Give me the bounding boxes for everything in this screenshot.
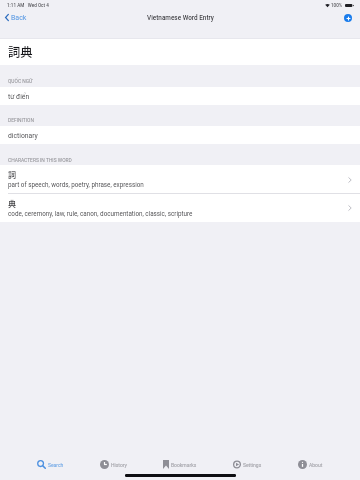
staticText: About <box>309 462 323 468</box>
button[interactable]: 詞 <box>0 165 360 194</box>
button[interactable]: Search <box>36 458 65 471</box>
staticText: Back <box>11 14 27 22</box>
button[interactable]: History <box>99 458 128 471</box>
staticText: code, ceremony, law, rule, canon, docume… <box>8 210 193 217</box>
staticText: DEFINITION <box>8 117 34 123</box>
button[interactable]: 典 <box>0 194 360 222</box>
staticText: CHARACTERS IN THIS WORD <box>8 157 72 163</box>
button[interactable]: Bookmarks <box>162 458 198 471</box>
staticText: dictionary <box>8 132 38 140</box>
button[interactable]: từ điển <box>0 87 360 105</box>
button[interactable]: About <box>297 458 324 471</box>
staticText: Settings <box>243 462 262 468</box>
staticText: từ điển <box>8 93 30 101</box>
button[interactable]: Add entry <box>344 14 352 22</box>
staticText: Search <box>48 462 64 468</box>
staticText: Vietnamese Word Entry <box>147 14 214 22</box>
staticText: 詞 <box>8 169 17 181</box>
staticText: 典 <box>8 198 17 210</box>
staticText: QUỐC NGỮ <box>8 78 33 84</box>
staticText: Bookmarks <box>171 462 197 468</box>
staticText: History <box>111 462 127 468</box>
button[interactable]: dictionary <box>0 126 360 144</box>
button[interactable]: Settings <box>232 458 263 471</box>
staticText: 詞典 <box>8 43 33 61</box>
staticText: part of speech, words, poetry, phrase, e… <box>8 181 144 188</box>
staticText: 1:11 AM Wed Oct 4 <box>7 3 49 8</box>
button[interactable]: Back <box>0 11 32 24</box>
staticText: 100% <box>331 3 343 8</box>
